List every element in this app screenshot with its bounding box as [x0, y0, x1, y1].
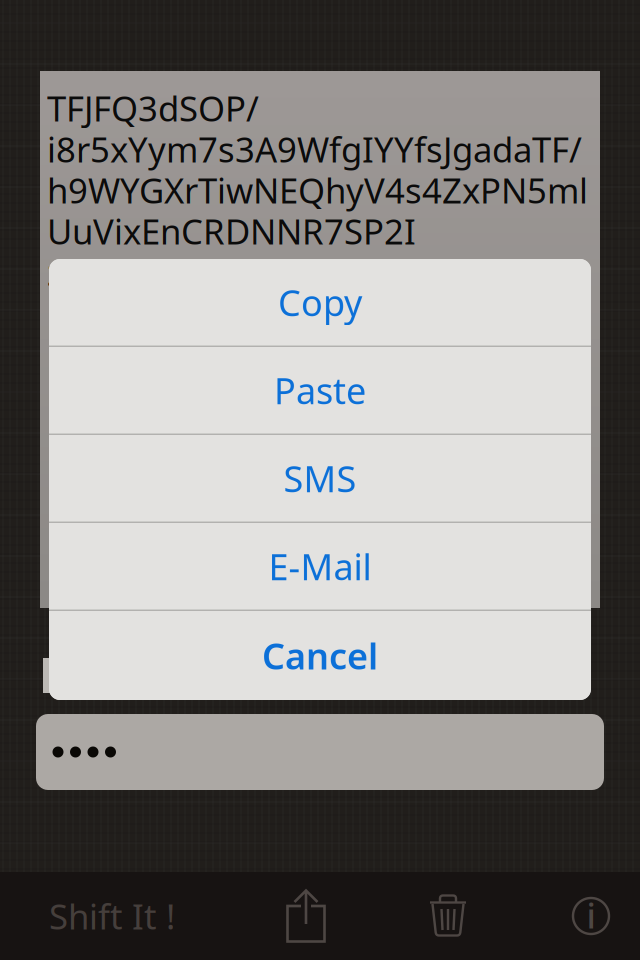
button[interactable]: Copy — [49, 259, 591, 345]
button[interactable]: Cancel — [49, 611, 591, 700]
staticText: TFJFQ3dSOP/ i8r5xYym7s3A9WfgIYYfsJgadaTF… — [47, 85, 588, 295]
button[interactable]: Delete — [408, 872, 488, 960]
staticText: i — [586, 892, 595, 938]
staticText: Copy — [278, 278, 362, 326]
button[interactable]: E-Mail — [49, 523, 591, 609]
button[interactable]: Paste — [49, 347, 591, 433]
button[interactable]: Share — [266, 872, 346, 960]
button[interactable]: Shift It ! — [0, 872, 209, 960]
staticText: Shift It ! — [49, 893, 175, 939]
staticText: SMS — [283, 454, 356, 502]
staticText: Cancel — [262, 632, 378, 679]
staticText: E-Mail — [268, 542, 371, 590]
button[interactable]: Info — [551, 872, 631, 960]
staticText: Paste — [274, 366, 366, 414]
button[interactable]: SMS — [49, 435, 591, 521]
